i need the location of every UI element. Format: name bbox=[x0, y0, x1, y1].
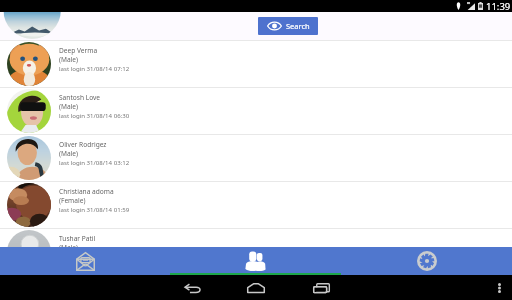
button[interactable]: More options bbox=[491, 275, 507, 300]
button[interactable]: Deep Verma bbox=[0, 41, 512, 87]
staticText: last login 31/08/14 01:59 bbox=[59, 205, 130, 213]
button[interactable]: Back bbox=[174, 275, 210, 300]
staticText: Search bbox=[286, 21, 310, 31]
staticText: Deep Verma bbox=[59, 46, 98, 55]
staticText: (Male) bbox=[59, 102, 79, 111]
staticText: last login 31/08/14 06:30 bbox=[59, 111, 130, 119]
staticText: Santosh Love bbox=[59, 93, 101, 102]
staticText: (Female) bbox=[59, 196, 86, 205]
button[interactable]: Messages bbox=[0, 247, 170, 275]
staticText: last login 31/08/14 07:12 bbox=[59, 64, 130, 72]
button[interactable]: Oliver Rodrigez bbox=[0, 135, 512, 181]
button[interactable]: Christiana adoma bbox=[0, 182, 512, 228]
staticText: (Male) bbox=[59, 149, 79, 158]
staticText: Oliver Rodrigez bbox=[59, 140, 107, 149]
staticText: 11:39 bbox=[486, 0, 511, 12]
button[interactable]: Settings bbox=[341, 247, 512, 275]
staticText: Christiana adoma bbox=[59, 187, 114, 196]
button[interactable]: Santosh Love bbox=[0, 88, 512, 134]
staticText: Tushar Patil bbox=[59, 234, 96, 243]
staticText: (Male) bbox=[59, 243, 79, 252]
button[interactable]: Recents bbox=[303, 275, 339, 300]
button[interactable]: Home bbox=[238, 275, 274, 300]
staticText: last login 31/08/14 03:12 bbox=[59, 158, 130, 166]
staticText: (Male) bbox=[59, 55, 79, 64]
staticText: last login 31/08/14 00:30 bbox=[59, 252, 130, 260]
button[interactable]: Search bbox=[258, 17, 318, 35]
button[interactable]: Tushar Patil bbox=[0, 229, 512, 275]
button[interactable]: People bbox=[170, 247, 341, 275]
